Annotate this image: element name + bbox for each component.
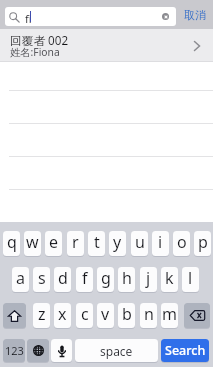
staticText: k xyxy=(165,267,174,289)
button[interactable]: 回覆者 002 xyxy=(0,29,213,61)
button[interactable]: p xyxy=(194,231,211,256)
staticText: w xyxy=(26,231,39,253)
button[interactable]: 123 xyxy=(3,339,25,362)
button[interactable]: g xyxy=(97,267,114,292)
button[interactable]: s xyxy=(33,267,50,292)
staticText: j xyxy=(146,267,151,289)
staticText: l xyxy=(188,267,193,289)
button[interactable]: Switch keyboard xyxy=(27,339,49,362)
staticText: e xyxy=(49,231,59,253)
staticText: 回覆者 002 xyxy=(10,32,69,48)
button[interactable]: space xyxy=(75,339,158,362)
staticText: space xyxy=(100,343,133,359)
button[interactable]: 取消 xyxy=(180,5,209,24)
button[interactable]: k xyxy=(161,267,178,292)
button[interactable]: e xyxy=(45,231,62,256)
button[interactable]: c xyxy=(76,303,93,328)
button[interactable]: l xyxy=(182,267,199,292)
staticText: Search xyxy=(165,342,206,359)
button[interactable]: Shift xyxy=(3,303,26,328)
staticText: 姓名:Fiona xyxy=(10,45,60,59)
button[interactable]: q xyxy=(3,231,20,256)
staticText: f xyxy=(82,267,88,289)
button[interactable]: b xyxy=(118,303,135,328)
staticText: b xyxy=(122,303,132,325)
staticText: o xyxy=(177,231,187,253)
button[interactable]: i xyxy=(152,231,169,256)
button[interactable]: Dictate xyxy=(51,339,72,362)
staticText: h xyxy=(122,267,132,289)
staticText: d xyxy=(58,267,68,289)
staticText: n xyxy=(144,303,154,325)
staticText: q xyxy=(7,231,17,253)
staticText: u xyxy=(135,231,145,253)
staticText: z xyxy=(38,303,46,325)
staticText: x xyxy=(58,303,67,325)
staticText: p xyxy=(198,231,208,253)
button[interactable]: Search xyxy=(161,339,209,362)
button[interactable]: j xyxy=(140,267,157,292)
button[interactable]: h xyxy=(118,267,135,292)
staticText: m xyxy=(162,303,177,325)
staticText: v xyxy=(101,303,110,325)
button[interactable]: v xyxy=(97,303,114,328)
button[interactable]: f xyxy=(76,267,93,292)
button[interactable]: o xyxy=(173,231,190,256)
button[interactable]: x xyxy=(54,303,71,328)
button[interactable]: Backspace xyxy=(184,303,210,328)
staticText: c xyxy=(81,303,89,325)
staticText: r xyxy=(72,231,79,253)
button[interactable]: t xyxy=(88,231,105,256)
staticText: s xyxy=(38,267,46,289)
button[interactable]: d xyxy=(54,267,71,292)
button[interactable]: w xyxy=(24,231,41,256)
button[interactable]: fi xyxy=(5,7,176,26)
staticText: t xyxy=(94,231,100,253)
staticText: 取消 xyxy=(184,8,206,22)
button[interactable]: Clear text xyxy=(162,13,169,20)
staticText: fi xyxy=(25,11,32,26)
button[interactable]: u xyxy=(131,231,148,256)
staticText: a xyxy=(16,267,25,289)
button[interactable]: y xyxy=(109,231,126,256)
button[interactable]: n xyxy=(140,303,157,328)
button[interactable]: z xyxy=(33,303,50,328)
staticText: g xyxy=(101,267,111,289)
staticText: i xyxy=(158,231,163,253)
staticText: 123 xyxy=(5,343,24,358)
staticText: y xyxy=(113,231,122,253)
button[interactable]: r xyxy=(67,231,84,256)
button[interactable]: a xyxy=(12,267,29,292)
button[interactable]: m xyxy=(161,303,178,328)
